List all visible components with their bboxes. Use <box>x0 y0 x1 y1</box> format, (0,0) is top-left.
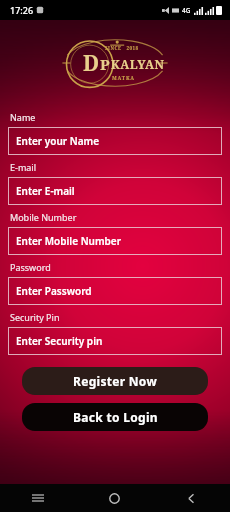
staticText: D <box>83 49 100 78</box>
staticText: Mobile Number <box>10 211 77 223</box>
button[interactable]: Back <box>153 484 230 512</box>
staticText: Register Now <box>73 373 157 389</box>
button[interactable]: Home <box>76 484 153 512</box>
staticText: Enter E-mail <box>16 184 75 198</box>
staticText: Password <box>10 261 51 273</box>
staticText: Enter Security pin <box>16 334 103 348</box>
staticText: MATKA <box>112 75 135 82</box>
staticText: P <box>100 54 110 74</box>
button[interactable]: Enter Password <box>8 277 222 305</box>
button[interactable]: Enter Security pin <box>8 327 222 355</box>
button[interactable]: Register Now <box>22 367 208 395</box>
button[interactable]: Enter Mobile Number <box>8 227 222 255</box>
staticText: Enter Mobile Number <box>16 234 121 248</box>
button[interactable]: Back to Login <box>22 403 208 431</box>
button[interactable]: Enter E-mail <box>8 177 222 205</box>
staticText: Security Pin <box>10 311 60 323</box>
staticText: SINCE 2018 <box>105 45 139 51</box>
button[interactable]: Enter your Name <box>8 127 222 155</box>
staticText: Back to Login <box>73 409 158 425</box>
staticText: Enter Password <box>16 284 92 298</box>
staticText: KALYAN <box>111 56 165 72</box>
staticText: 17:26 <box>10 4 34 16</box>
staticText: Name <box>10 111 36 123</box>
staticText: 4G <box>182 6 191 15</box>
button[interactable]: Recent apps <box>0 484 76 512</box>
staticText: Enter your Name <box>16 134 100 148</box>
staticText: E-mail <box>10 161 37 173</box>
